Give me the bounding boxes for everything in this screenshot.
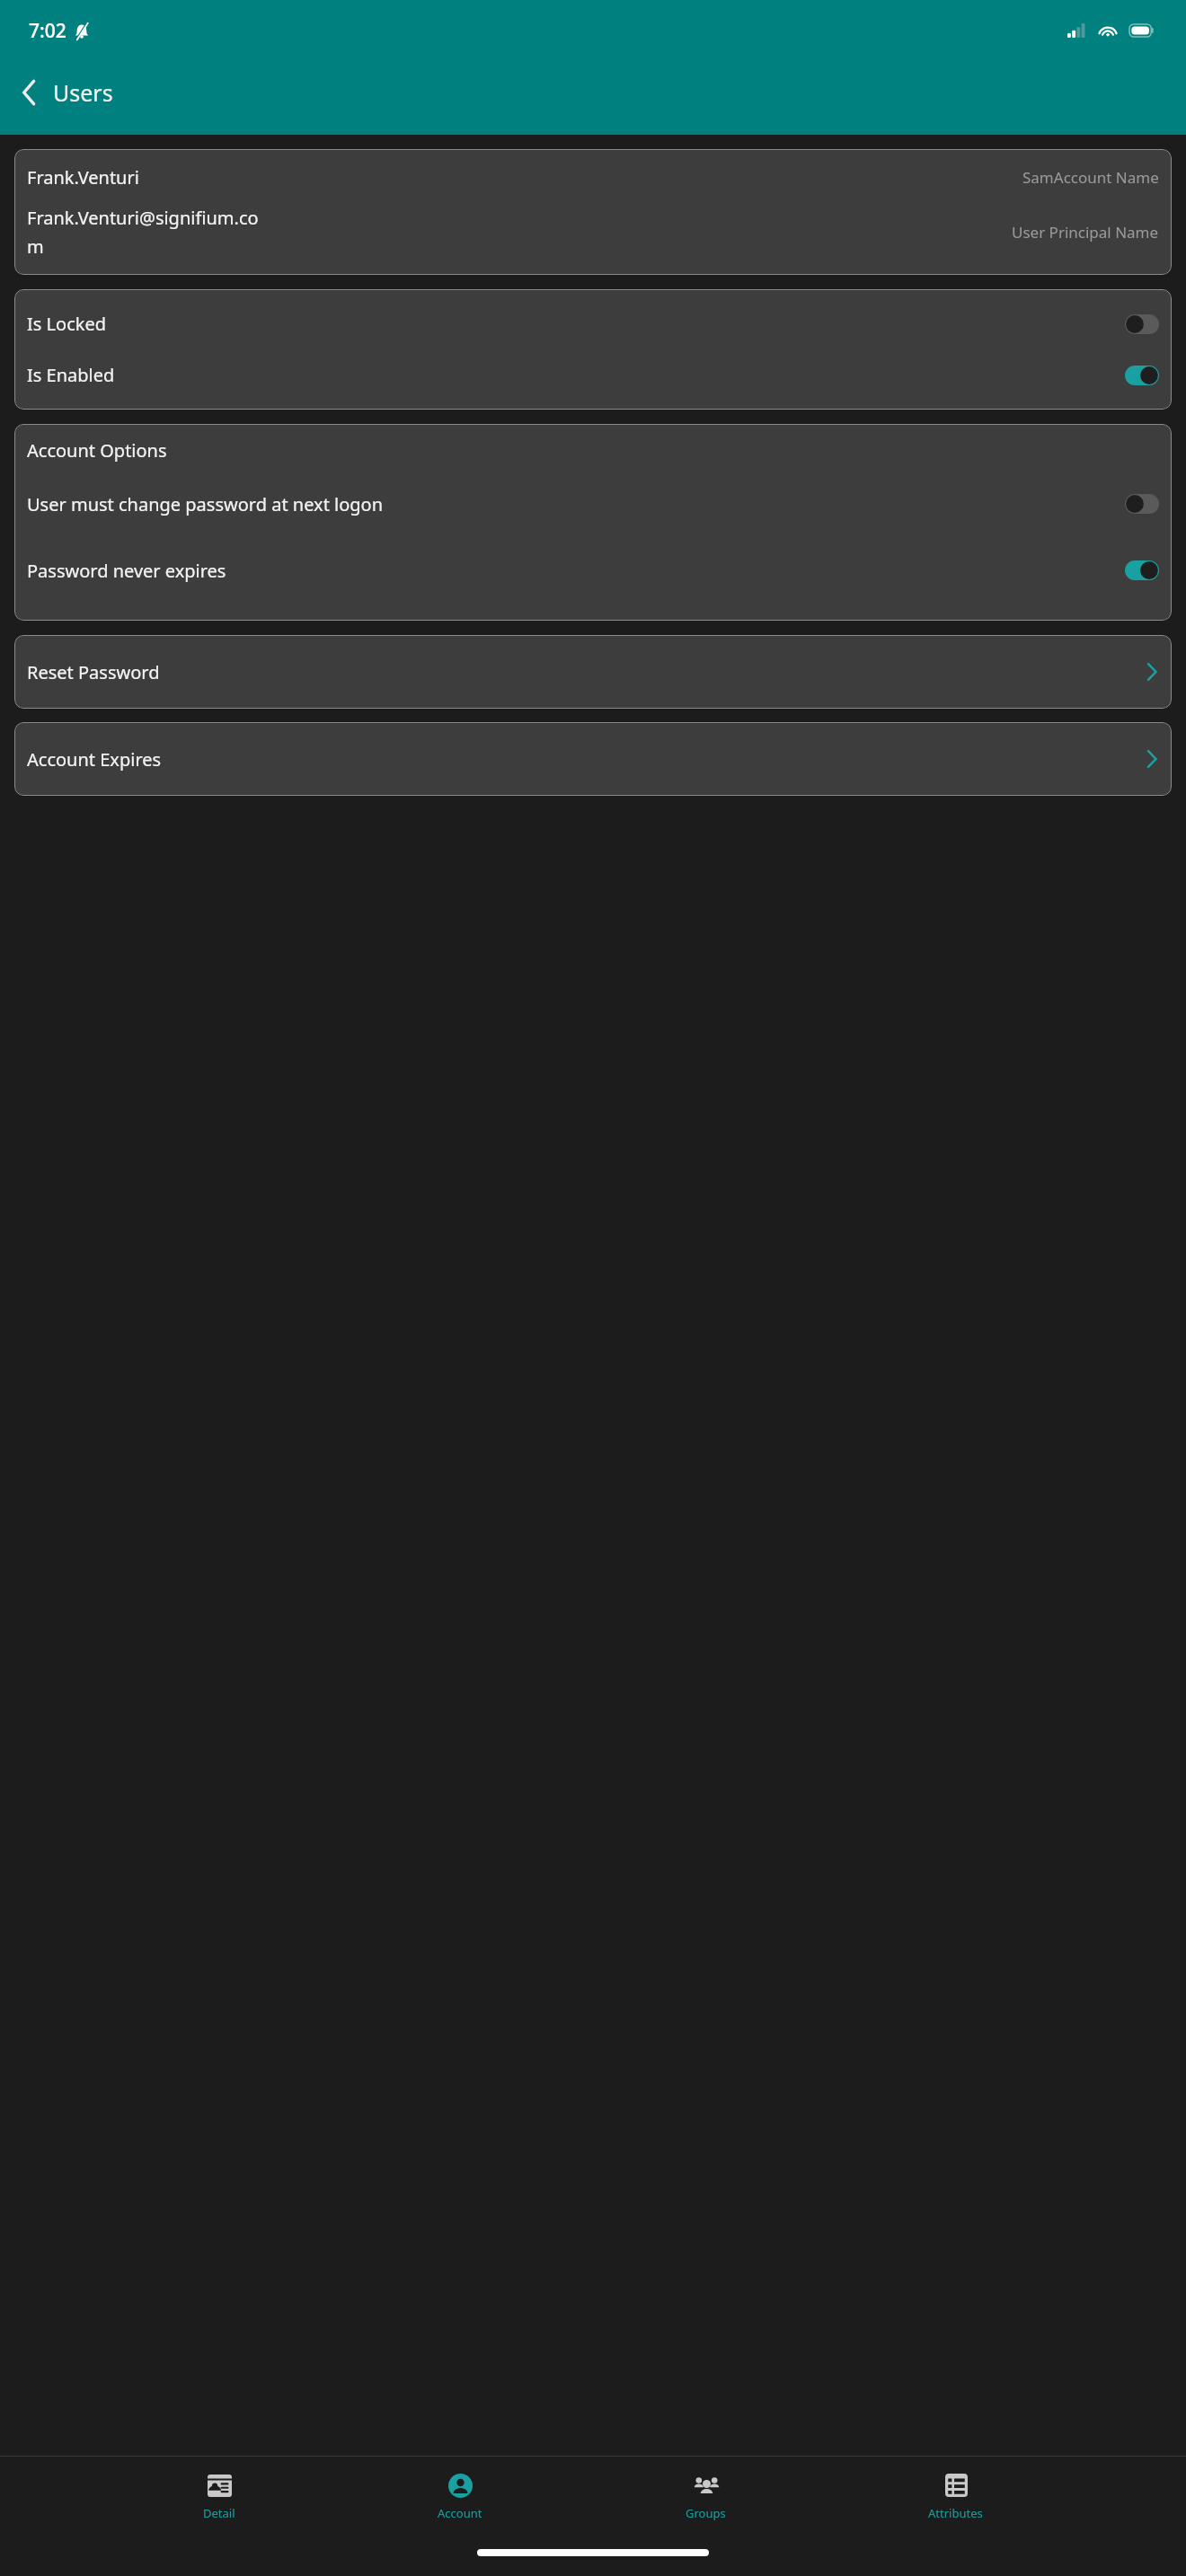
button[interactable]: Is Enabled [27, 349, 1159, 401]
staticText: Account Options [27, 438, 167, 463]
staticText: Password never expires [27, 559, 1116, 583]
staticText: Attributes [928, 2505, 983, 2521]
staticText: Detail [203, 2505, 235, 2521]
button[interactable]: Groups [686, 2466, 726, 2527]
other: Account [448, 2474, 473, 2498]
button[interactable]: Detail [203, 2466, 235, 2527]
staticText: User must change password at next logon [27, 492, 1116, 516]
staticText: 7:02 [29, 18, 66, 44]
button[interactable]: Account Expires [14, 722, 1172, 796]
staticText: Users [53, 77, 113, 108]
other: Back [9, 73, 49, 112]
staticText: Frank.Venturi [27, 165, 1022, 190]
staticText: Account Expires [27, 747, 1145, 772]
button[interactable]: Account [438, 2466, 482, 2527]
staticText: Is Locked [27, 312, 1125, 336]
staticText: Reset Password [27, 660, 1145, 684]
staticText: Frank.Venturi@signifium.co m [27, 206, 1012, 259]
button[interactable]: Reset Password [14, 635, 1172, 709]
button[interactable]: Back [0, 61, 1186, 124]
staticText: Groups [686, 2505, 726, 2521]
staticText: User Principal Name [1012, 222, 1159, 243]
staticText: Account [438, 2505, 482, 2521]
button[interactable]: User must change password at next logon [27, 481, 1159, 527]
button[interactable]: Attributes [928, 2466, 983, 2527]
button[interactable]: Is Locked [27, 298, 1159, 349]
button[interactable]: Password never expires [27, 547, 1159, 594]
staticText: Is Enabled [27, 363, 1125, 387]
staticText: SamAccount Name [1022, 167, 1159, 188]
